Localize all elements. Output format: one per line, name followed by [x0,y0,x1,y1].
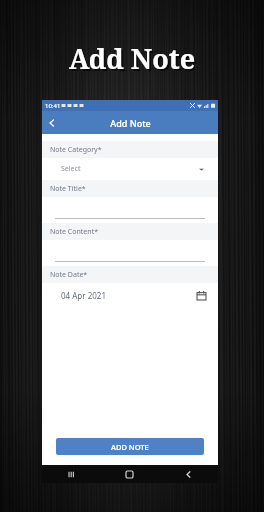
button[interactable]: 04 Apr 2021 [42,283,218,307]
staticText: Note Title* [50,184,86,194]
button[interactable]: Select [42,158,218,180]
staticText: Add Note [69,40,196,77]
staticText: Note Content* [50,227,99,237]
staticText: ADD NOTE [111,442,149,452]
button[interactable]: Back [42,113,62,133]
staticText: Add Note [110,117,151,129]
staticText: Select [61,164,81,174]
staticText: Note Date* [50,270,88,280]
staticText: 10:41 [45,102,61,110]
button[interactable]: Back [159,465,218,483]
staticText: 04 Apr 2021 [61,290,106,301]
button[interactable]: Home [100,465,159,483]
staticText: Add Note [71,42,198,79]
button[interactable] [42,240,218,266]
button[interactable]: ADD NOTE [56,438,204,455]
staticText: Note Category* [50,145,102,155]
other: Pick date [197,291,206,300]
button[interactable]: Recents [42,465,100,483]
button[interactable] [42,197,218,223]
